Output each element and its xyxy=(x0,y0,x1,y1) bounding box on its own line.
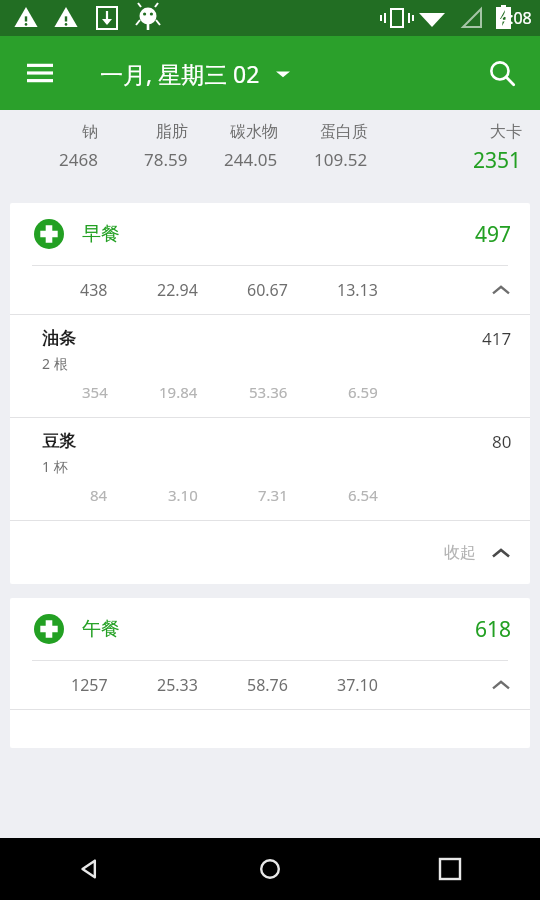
staticText: 354 xyxy=(82,382,108,402)
staticText: 109.52 xyxy=(314,148,368,171)
staticText: 收起 xyxy=(444,543,476,563)
button[interactable]: 收起 xyxy=(10,521,530,584)
staticText: 1 杯 xyxy=(42,457,68,476)
button[interactable]: Open navigation menu xyxy=(16,49,64,97)
staticText: 早餐 xyxy=(82,222,120,246)
button[interactable]: Add food xyxy=(10,203,530,265)
button[interactable]: 438 xyxy=(10,266,530,314)
staticText: 脂肪 xyxy=(156,122,188,142)
button[interactable]: 1257 xyxy=(10,661,530,709)
staticText: 一月, 星期三 02 xyxy=(100,58,260,89)
staticText: 438 xyxy=(80,279,108,301)
staticText: 58.76 xyxy=(247,674,288,696)
other: Add food xyxy=(34,614,64,644)
staticText: 大卡 xyxy=(490,122,522,142)
staticText: 497 xyxy=(475,220,512,249)
staticText: 6.54 xyxy=(348,485,378,505)
staticText: 3.10 xyxy=(168,485,198,505)
button[interactable]: Search xyxy=(478,49,526,97)
staticText: 80 xyxy=(492,430,512,453)
staticText: 4:08 xyxy=(500,7,532,29)
staticText: 6.59 xyxy=(348,382,378,402)
staticText: 244.05 xyxy=(224,148,278,171)
staticText: 19.84 xyxy=(159,382,198,402)
button[interactable]: Back xyxy=(0,838,180,900)
staticText: 37.10 xyxy=(337,674,378,696)
other: Add food xyxy=(34,219,64,249)
staticText: 13.13 xyxy=(337,279,378,301)
staticText: 2351 xyxy=(473,146,522,175)
staticText: 1257 xyxy=(71,674,108,696)
staticText: 7.31 xyxy=(258,485,288,505)
staticText: 钠 xyxy=(82,122,98,142)
staticText: 25.33 xyxy=(157,674,198,696)
staticText: 60.67 xyxy=(247,279,288,301)
staticText: 84 xyxy=(90,485,108,505)
button[interactable]: Add food xyxy=(10,598,530,660)
staticText: 2468 xyxy=(59,148,98,171)
staticText: 618 xyxy=(475,615,512,644)
staticText: 碳水物 xyxy=(230,122,278,142)
button[interactable]: 一月, 星期三 02 xyxy=(100,58,290,89)
button[interactable]: 豆浆 xyxy=(10,418,530,521)
staticText: 蛋白质 xyxy=(320,122,368,142)
staticText: 78.59 xyxy=(144,148,188,171)
button[interactable]: Home xyxy=(180,838,360,900)
staticText: 豆浆 xyxy=(42,431,76,452)
staticText: 417 xyxy=(482,327,512,350)
button[interactable]: 油条 xyxy=(10,315,530,418)
staticText: 22.94 xyxy=(157,279,198,301)
button[interactable]: Recent apps xyxy=(360,838,540,900)
staticText: 2 根 xyxy=(42,354,68,373)
staticText: 油条 xyxy=(42,328,76,349)
staticText: 午餐 xyxy=(82,617,120,641)
staticText: 53.36 xyxy=(249,382,288,402)
